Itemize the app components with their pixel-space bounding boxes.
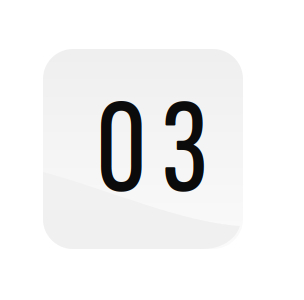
staticText: 03: [96, 68, 208, 232]
